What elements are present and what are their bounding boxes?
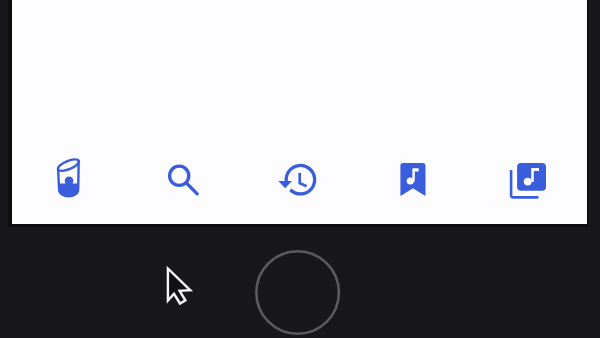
button[interactable]: Shazam (12, 146, 127, 224)
button[interactable]: Search (127, 146, 242, 224)
button[interactable]: Saved tracks (357, 146, 472, 224)
button[interactable]: History (242, 146, 357, 224)
button[interactable]: Library (472, 146, 587, 224)
